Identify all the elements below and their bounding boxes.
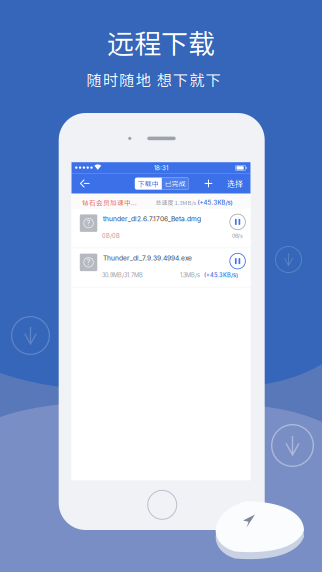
staticText: thunder_dl2.6.7.1706_Beta.dmg bbox=[103, 215, 201, 223]
staticText: 钻石会员加速中... bbox=[82, 198, 137, 207]
staticText: 已完成 bbox=[165, 179, 186, 189]
button[interactable]: 选择 bbox=[221, 173, 248, 194]
button[interactable]: ? bbox=[71, 248, 250, 287]
staticText: 18:31 bbox=[154, 164, 168, 172]
staticText: ? bbox=[86, 218, 90, 227]
staticText: 总速度 1.3MB/s bbox=[155, 198, 197, 207]
button[interactable]: Back bbox=[71, 173, 98, 194]
staticText: Thunder_dl_7.9.39.4994.exe bbox=[103, 254, 192, 262]
staticText: ? bbox=[86, 258, 90, 267]
button[interactable]: 已完成 bbox=[162, 177, 189, 190]
staticText: 下载中 bbox=[138, 179, 159, 189]
button[interactable]: 下载中 bbox=[135, 177, 162, 190]
staticText: 随时随地 bbox=[87, 68, 150, 90]
staticText: 远程下载 bbox=[107, 22, 215, 61]
staticText: 选择 bbox=[227, 178, 243, 189]
button[interactable]: ? bbox=[71, 209, 250, 248]
staticText: 1.3MB/s bbox=[180, 272, 204, 278]
staticText: (+45.3KB/s) bbox=[197, 199, 232, 206]
staticText: (+45.3KB/s) bbox=[204, 272, 238, 278]
staticText: 30.9MB/31.7MB bbox=[102, 272, 143, 278]
staticText: 想下就下 bbox=[157, 68, 220, 90]
button[interactable]: Add download bbox=[197, 173, 219, 194]
staticText: 0B/0B bbox=[102, 232, 120, 239]
staticText: 0B/s bbox=[232, 233, 243, 239]
